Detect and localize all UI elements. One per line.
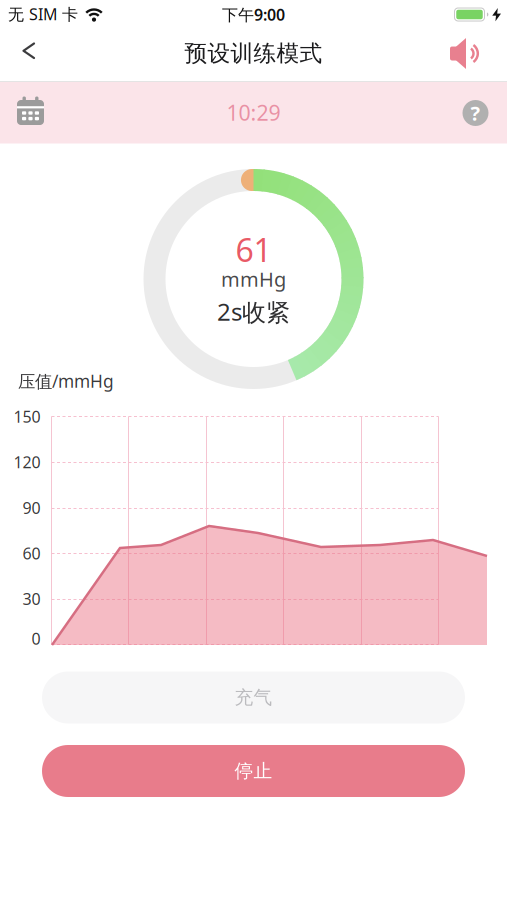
staticText: 60 bbox=[22, 543, 40, 564]
staticText: 充气 bbox=[234, 686, 272, 709]
staticText: 30 bbox=[22, 588, 40, 609]
button[interactable]: 声音 bbox=[444, 31, 488, 75]
button[interactable]: 训练记录 bbox=[8, 90, 52, 134]
staticText: 150 bbox=[13, 406, 40, 427]
staticText: 停止 bbox=[234, 759, 272, 782]
staticText: 61 bbox=[235, 228, 271, 271]
button[interactable]: 帮助 bbox=[462, 100, 488, 126]
staticText: 120 bbox=[13, 451, 40, 473]
staticText: ? bbox=[470, 100, 480, 126]
staticText: 90 bbox=[22, 497, 40, 518]
staticText: 0 bbox=[31, 628, 40, 649]
button[interactable]: 充气 bbox=[42, 671, 465, 723]
staticText: 无 SIM 卡 bbox=[8, 3, 78, 25]
staticText: mmHg bbox=[221, 266, 286, 292]
button[interactable]: 返回 bbox=[8, 31, 52, 75]
staticText: 2s收紧 bbox=[217, 295, 290, 327]
staticText: 预设训练模式 bbox=[184, 40, 322, 67]
staticText: 10:29 bbox=[226, 98, 280, 127]
staticText: 下午9:00 bbox=[222, 4, 285, 25]
button[interactable]: 停止 bbox=[42, 745, 465, 797]
staticText: 压值/mmHg bbox=[18, 369, 114, 392]
